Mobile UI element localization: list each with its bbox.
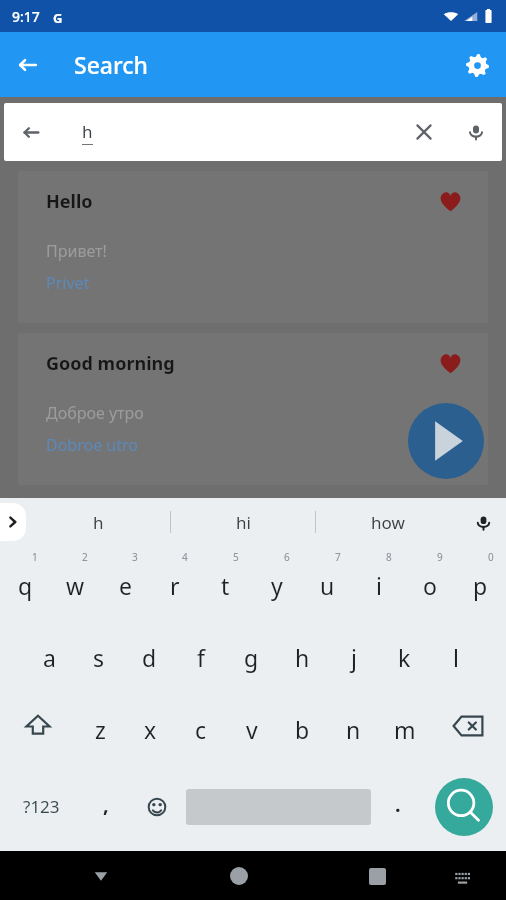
button[interactable]: Space [183,762,374,851]
staticText: o [423,570,437,601]
button[interactable]: Favorite [430,343,470,383]
staticText: l [453,642,459,673]
button[interactable]: f [175,618,226,690]
button[interactable]: Shift [0,690,75,762]
button[interactable]: v [226,690,277,762]
button[interactable]: a [24,618,74,690]
button[interactable]: 8 [353,546,404,618]
staticText: f [197,642,205,673]
button[interactable]: 5 [200,546,251,618]
staticText: hi [236,511,251,534]
button[interactable]: Back [4,103,502,161]
button[interactable]: ?123 [0,762,82,851]
button[interactable]: Favorite [430,181,470,221]
button[interactable]: l [430,618,481,690]
staticText: h [93,511,104,534]
button[interactable]: Recents [354,853,400,899]
staticText: i [376,570,382,601]
staticText: Privet [46,272,90,294]
button[interactable]: Back [4,105,58,159]
staticText: Dobroe utro [46,434,138,456]
button[interactable]: Comma [82,762,130,851]
staticText: m [394,714,416,745]
staticText: 1 [32,550,38,564]
button[interactable]: 7 [302,546,353,618]
staticText: 0 [488,550,494,564]
button[interactable]: how [316,498,460,546]
button[interactable]: Home [216,853,262,899]
button[interactable]: c [175,690,226,762]
staticText: j [351,642,357,673]
button[interactable]: 1 [0,546,50,618]
button[interactable]: 9 [404,546,455,618]
staticText: n [346,714,361,745]
button[interactable]: Search [435,778,493,836]
staticText: g [244,642,259,673]
button[interactable]: Voice search [450,106,502,158]
staticText: 4 [182,550,188,564]
staticText: Привет! [46,240,107,262]
staticText: Search [74,49,148,80]
button[interactable]: hi [171,498,315,546]
button[interactable]: 6 [251,546,302,618]
staticText: h [295,642,310,673]
button[interactable]: More suggestions [0,503,26,541]
button[interactable]: 4 [150,546,200,618]
button[interactable]: 2 [50,546,100,618]
staticText: 7 [335,550,341,564]
button[interactable]: Clear [398,106,450,158]
staticText: . [395,791,401,818]
staticText: e [119,570,132,601]
button[interactable]: Voice input [460,498,506,546]
staticText: d [142,642,157,673]
button[interactable]: Back [78,853,124,899]
staticText: Hello [46,189,93,214]
staticText: y [271,570,283,601]
button[interactable]: Period [374,762,422,851]
staticText: ?123 [23,795,60,818]
staticText: p [473,570,488,601]
button[interactable]: k [379,618,430,690]
staticText: Good morning [46,351,175,376]
staticText: v [246,714,258,745]
staticText: b [295,714,310,745]
button[interactable]: h [277,618,328,690]
button[interactable]: Switch keyboard [441,855,483,897]
staticText: w [66,570,85,601]
staticText: z [95,714,106,745]
button[interactable]: s [74,618,124,690]
button[interactable]: 0 [455,546,506,618]
staticText: Доброе утро [46,402,144,424]
staticText: x [144,714,157,745]
staticText: r [170,570,180,601]
button[interactable]: g [226,618,277,690]
button[interactable]: x [125,690,175,762]
staticText: , [103,791,109,818]
button[interactable]: Settings [448,36,506,94]
button[interactable]: Hello [18,171,488,323]
button[interactable]: Emoji [130,762,183,851]
staticText: t [221,570,230,601]
button[interactable]: n [328,690,379,762]
staticText: 5 [233,550,239,564]
button[interactable]: b [277,690,328,762]
button[interactable]: h [26,498,170,546]
button[interactable]: Backspace [430,690,506,762]
button[interactable]: j [328,618,379,690]
staticText: 6 [284,550,290,564]
button[interactable]: d [124,618,175,690]
button[interactable]: Back [0,37,56,93]
staticText: 8 [386,550,392,564]
button[interactable]: z [75,690,125,762]
staticText: G [53,9,63,24]
button[interactable]: Good morning [18,333,488,485]
staticText: s [93,642,105,673]
button[interactable]: m [379,690,430,762]
button[interactable]: Play [408,403,484,479]
staticText: k [398,642,411,673]
staticText: c [195,714,207,745]
button[interactable]: 3 [100,546,150,618]
staticText: q [18,570,33,601]
staticText: u [320,570,335,601]
staticText: 9:17 [12,7,40,26]
